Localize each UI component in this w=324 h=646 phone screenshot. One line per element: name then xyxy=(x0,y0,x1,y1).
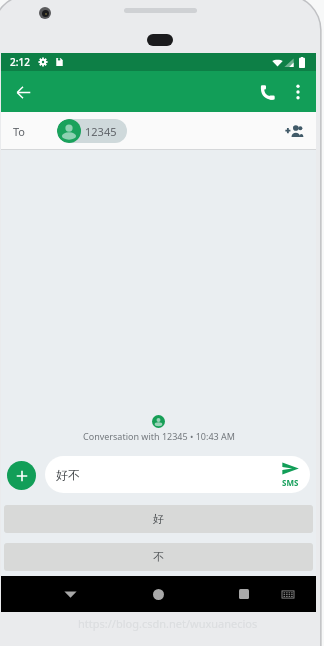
button[interactable]: 不 xyxy=(4,543,313,571)
staticText: Conversation with 12345 • 10:43 AM xyxy=(83,430,235,442)
staticText: 2:12 xyxy=(10,55,30,69)
staticText: 12345 xyxy=(85,124,117,139)
staticText: 好 xyxy=(153,512,164,526)
button[interactable]: More options xyxy=(282,76,314,108)
button[interactable]: Recents xyxy=(227,576,261,612)
button[interactable]: Switch keyboard xyxy=(274,576,302,612)
button[interactable]: 12345 xyxy=(57,119,127,143)
button[interactable]: Call xyxy=(249,74,285,110)
staticText: 好不 xyxy=(56,467,80,482)
button[interactable]: 好 xyxy=(4,505,313,533)
button[interactable]: Back xyxy=(53,576,87,612)
button[interactable]: 好不 xyxy=(45,456,310,493)
staticText: SMS xyxy=(282,477,299,488)
button[interactable]: Send SMS xyxy=(282,462,299,488)
button[interactable]: Add people xyxy=(280,117,308,145)
button[interactable]: Home xyxy=(141,576,175,612)
staticText: 不 xyxy=(153,550,164,564)
button[interactable]: Add attachment xyxy=(7,461,36,490)
button[interactable]: Back xyxy=(5,74,41,110)
staticText: https://blog.csdn.net/wuxuanecios xyxy=(78,616,258,631)
staticText: To xyxy=(13,124,26,139)
